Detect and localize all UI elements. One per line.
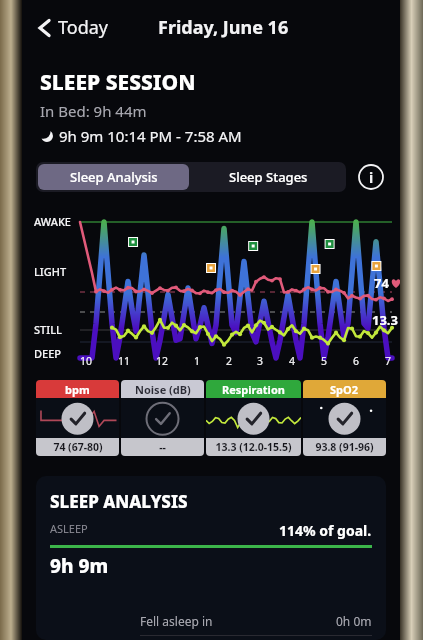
staticText: 3	[257, 354, 264, 368]
button[interactable]: Today	[32, 9, 114, 46]
staticText: Sleep Stages	[229, 168, 308, 186]
staticText: In Bed: 9h 44m	[40, 101, 147, 121]
staticText: 5	[321, 354, 328, 368]
staticText: 13.3 (12.0-15.5)	[215, 440, 292, 454]
staticText: 11	[118, 354, 131, 368]
staticText: 2	[226, 354, 233, 368]
staticText: LIGHT	[34, 264, 67, 279]
staticText: Sleep Analysis	[70, 168, 158, 186]
button[interactable]: SLEEP ANALYSIS	[36, 476, 386, 640]
staticText: 74	[374, 274, 389, 292]
staticText: Fell asleep in	[140, 613, 213, 629]
staticText: 10	[80, 354, 93, 368]
staticText: 93.8 (91-96)	[315, 440, 374, 454]
staticText: SLEEP ANALYSIS	[50, 490, 188, 513]
button[interactable]: Noise (dB)	[121, 380, 204, 456]
staticText: 9h 9m 10:14 PM - 7:58 AM	[59, 126, 242, 146]
staticText: 4	[289, 354, 296, 368]
staticText: bpm	[65, 382, 90, 397]
button[interactable]: Respiration	[206, 380, 301, 456]
staticText: --	[159, 440, 166, 454]
staticText: 6	[353, 354, 360, 368]
staticText: 7	[385, 354, 392, 368]
staticText: ASLEEP	[50, 521, 88, 536]
staticText: Noise (dB)	[135, 382, 191, 397]
staticText: Today	[58, 15, 108, 40]
staticText: Respiration	[222, 382, 285, 397]
staticText: i	[369, 168, 374, 187]
staticText: DEEP	[34, 346, 62, 361]
staticText: 74 (67-80)	[53, 440, 103, 454]
staticText: Friday, June 16	[158, 15, 289, 40]
staticText: 13.3	[372, 311, 398, 329]
staticText: 1	[194, 354, 201, 368]
staticText: 9h 9m	[50, 553, 109, 579]
staticText: 0h 0m	[336, 613, 372, 629]
button[interactable]: bpm	[36, 380, 119, 456]
staticText: STILL	[34, 322, 62, 337]
staticText: 114% of goal.	[279, 521, 372, 540]
button[interactable]: Info	[356, 162, 386, 192]
staticText: 12	[156, 354, 169, 368]
staticText: SpO2	[330, 382, 359, 397]
button[interactable]: SpO2	[303, 380, 386, 456]
button[interactable]: Sleep Stages	[191, 162, 346, 192]
staticText: AWAKE	[34, 214, 71, 229]
button[interactable]: Sleep Analysis	[38, 164, 189, 190]
staticText: SLEEP SESSION	[40, 68, 196, 97]
